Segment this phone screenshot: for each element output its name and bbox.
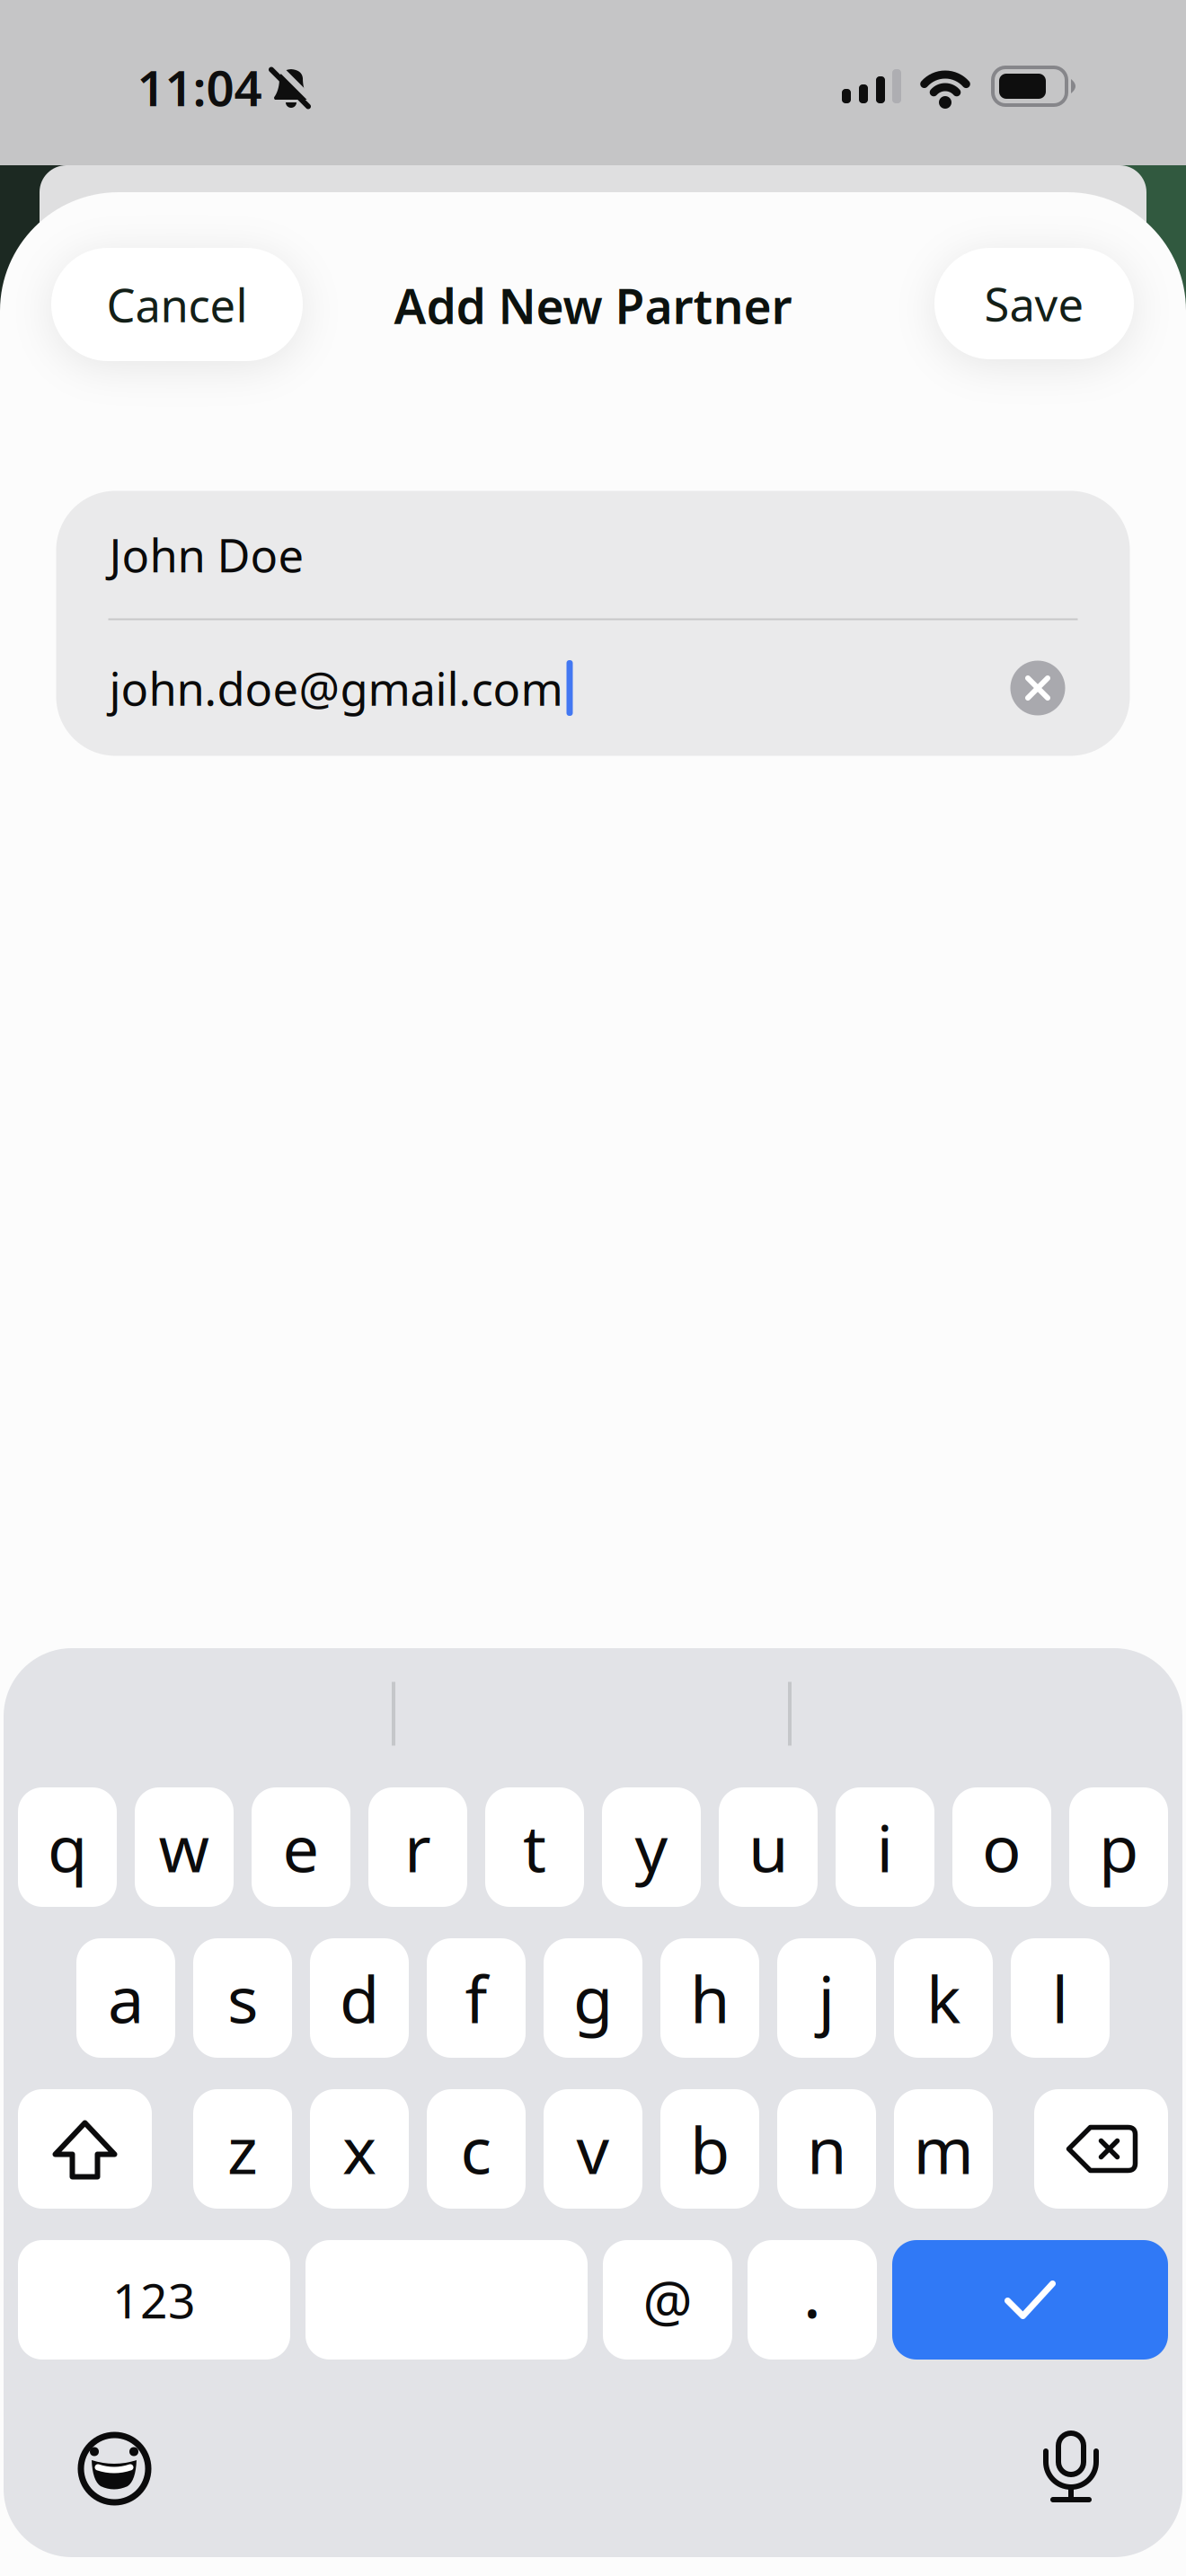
staticText: t xyxy=(523,1804,546,1890)
button[interactable]: j xyxy=(777,1938,876,2058)
button[interactable]: n xyxy=(777,2089,876,2209)
button[interactable]: Emoji xyxy=(65,2419,164,2518)
button[interactable]: z xyxy=(193,2089,292,2209)
staticText: w xyxy=(159,1804,210,1890)
button[interactable]: k xyxy=(894,1938,993,2058)
staticText: n xyxy=(807,2106,846,2192)
staticText: u xyxy=(748,1804,788,1890)
button[interactable]: r xyxy=(368,1787,467,1907)
staticText: . xyxy=(803,2245,822,2337)
button[interactable]: Save xyxy=(934,248,1134,359)
button[interactable]: e xyxy=(252,1787,350,1907)
staticText: Add New Partner xyxy=(394,274,792,337)
button[interactable]: @ xyxy=(603,2240,732,2360)
button[interactable]: . xyxy=(748,2240,877,2360)
staticText: 11:04 xyxy=(137,55,262,120)
staticText: c xyxy=(460,2106,492,2192)
button[interactable]: y xyxy=(602,1787,701,1907)
button[interactable]: i xyxy=(836,1787,934,1907)
staticText: f xyxy=(465,1955,487,2041)
button[interactable]: John Doe xyxy=(56,491,1130,618)
button[interactable]: Clear text xyxy=(1010,661,1065,715)
button[interactable]: m xyxy=(894,2089,993,2209)
staticText: v xyxy=(576,2106,610,2192)
button[interactable]: john.doe@gmail.com xyxy=(56,620,1130,756)
staticText: h xyxy=(690,1955,730,2041)
staticText: m xyxy=(913,2106,974,2192)
staticText: b xyxy=(690,2106,730,2192)
button[interactable]: p xyxy=(1069,1787,1168,1907)
staticText: s xyxy=(227,1955,258,2041)
staticText: john.doe@gmail.com xyxy=(109,658,563,718)
button[interactable]: u xyxy=(719,1787,818,1907)
button[interactable]: Delete xyxy=(1034,2089,1168,2209)
staticText: Save xyxy=(984,273,1084,334)
button[interactable]: g xyxy=(544,1938,642,2058)
button[interactable]: Return xyxy=(892,2240,1168,2360)
button[interactable]: s xyxy=(193,1938,292,2058)
staticText: John Doe xyxy=(109,524,304,585)
staticText: r xyxy=(404,1804,431,1890)
staticText: k xyxy=(926,1955,960,2041)
button[interactable]: x xyxy=(310,2089,409,2209)
staticText: 123 xyxy=(112,2268,196,2332)
staticText: j xyxy=(818,1955,835,2041)
staticText: z xyxy=(227,2106,258,2192)
button[interactable]: v xyxy=(544,2089,642,2209)
staticText: d xyxy=(340,1955,379,2041)
staticText: @ xyxy=(643,2263,692,2336)
button[interactable]: 123 xyxy=(18,2240,290,2360)
button[interactable]: h xyxy=(660,1938,759,2058)
staticText: a xyxy=(108,1955,144,2041)
staticText: q xyxy=(48,1804,87,1890)
staticText: o xyxy=(982,1804,1022,1890)
button[interactable]: Space xyxy=(305,2240,588,2360)
staticText: p xyxy=(1099,1804,1138,1890)
staticText: y xyxy=(635,1804,668,1890)
button[interactable]: w xyxy=(135,1787,234,1907)
button[interactable]: b xyxy=(660,2089,759,2209)
button[interactable]: f xyxy=(427,1938,526,2058)
staticText: x xyxy=(342,2106,376,2192)
staticText: i xyxy=(876,1804,894,1890)
button[interactable]: l xyxy=(1011,1938,1110,2058)
button[interactable]: Dictate xyxy=(1022,2413,1120,2511)
button[interactable]: c xyxy=(427,2089,526,2209)
button[interactable]: o xyxy=(952,1787,1051,1907)
button[interactable]: d xyxy=(310,1938,409,2058)
staticText: g xyxy=(573,1955,613,2041)
staticText: Cancel xyxy=(106,274,248,335)
button[interactable]: Shift xyxy=(18,2089,152,2209)
button[interactable]: a xyxy=(76,1938,175,2058)
staticText: e xyxy=(283,1804,319,1890)
button[interactable]: Cancel xyxy=(51,248,303,361)
button[interactable]: q xyxy=(18,1787,117,1907)
staticText: l xyxy=(1052,1955,1069,2041)
button[interactable]: t xyxy=(485,1787,584,1907)
